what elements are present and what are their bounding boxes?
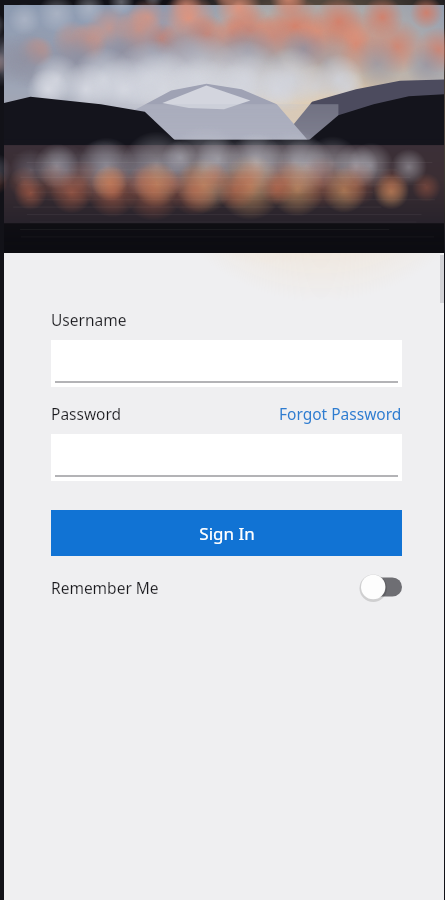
button[interactable] [51,434,402,481]
staticText: Sign In [199,522,255,545]
staticText: Remember Me [51,577,159,598]
staticText: Password [51,403,122,424]
button[interactable]: Forgot Password [279,403,402,424]
staticText: Forgot Password [279,403,402,424]
button[interactable]: Remember Me [51,572,402,602]
button[interactable]: Sign In [51,510,402,556]
staticText: Username [51,309,127,330]
button[interactable]: Remember Me toggle, off [360,574,402,600]
button[interactable] [51,340,402,387]
